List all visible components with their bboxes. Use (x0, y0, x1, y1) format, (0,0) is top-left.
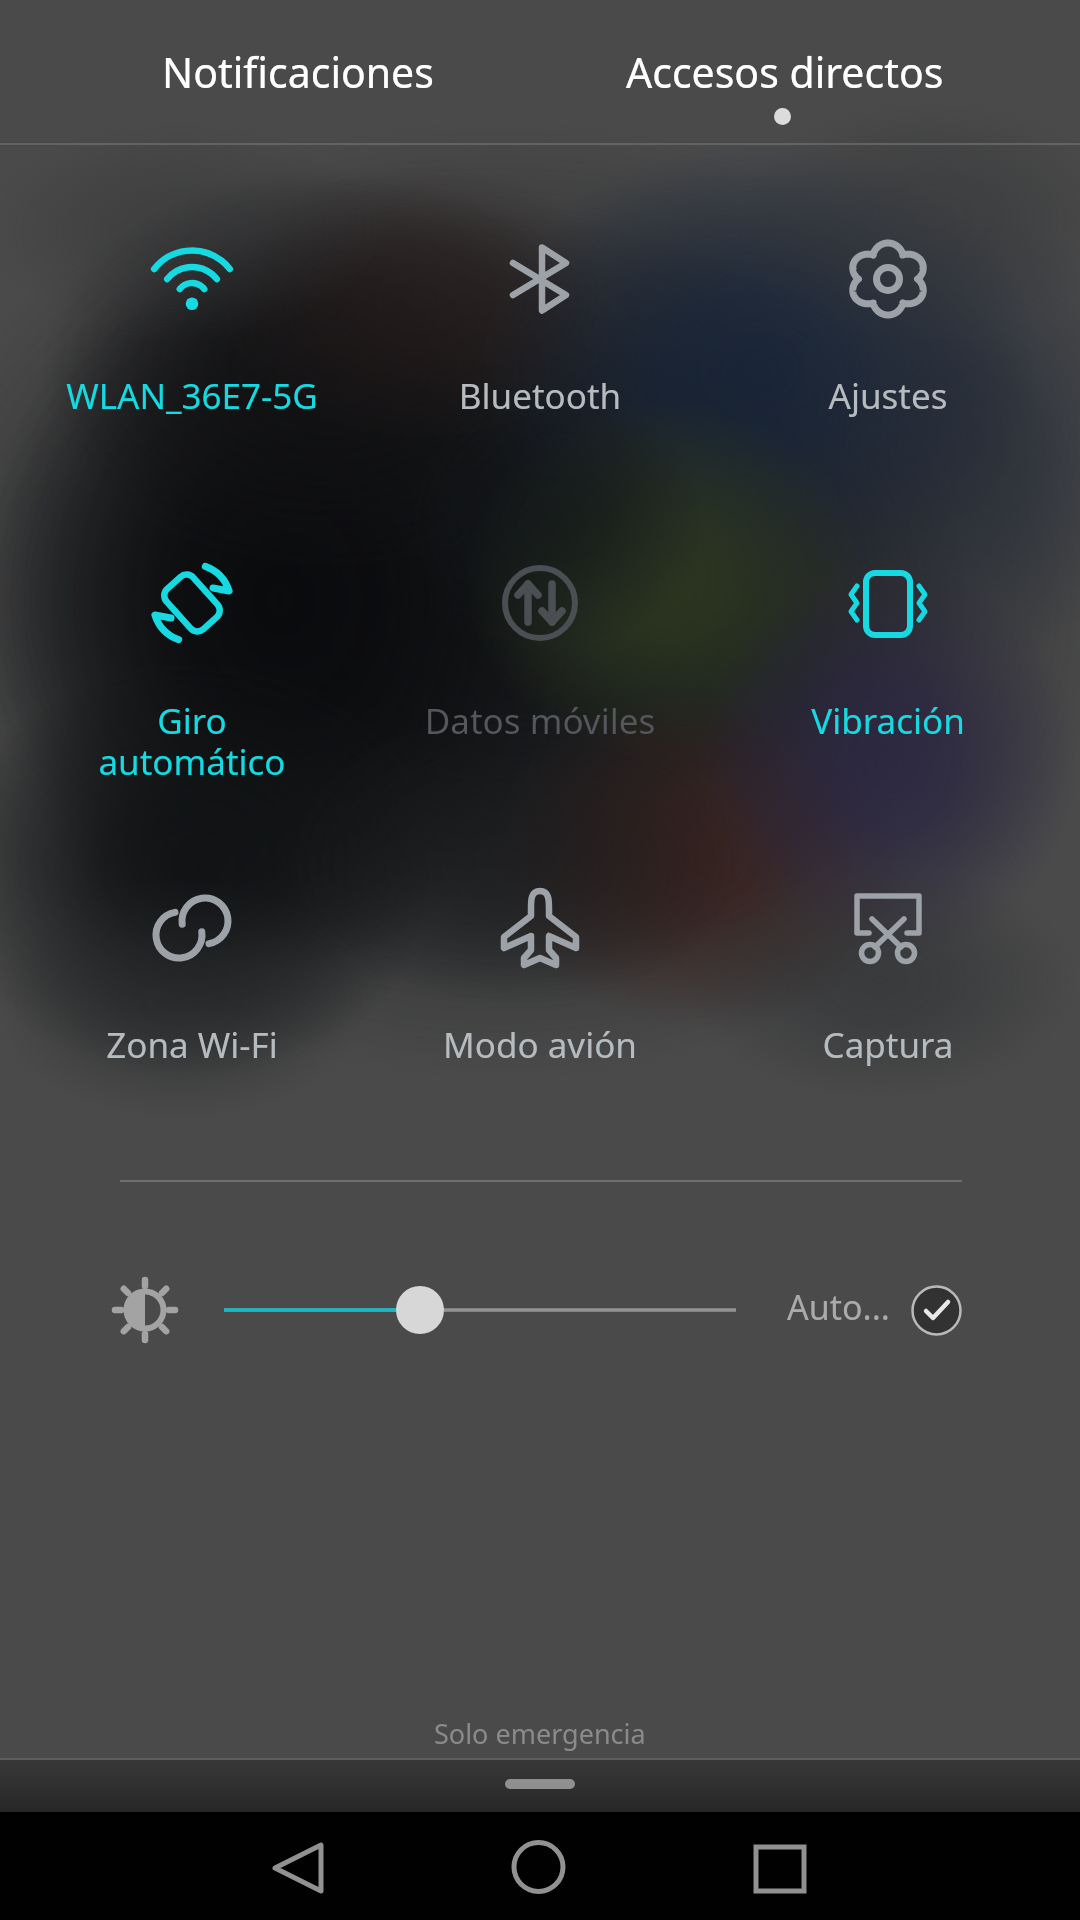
staticText: Captura (714, 1021, 1062, 1069)
button[interactable]: Recents (744, 1833, 814, 1903)
staticText: Solo emergencia (434, 1715, 646, 1752)
staticText: Zona Wi-Fi (18, 1021, 366, 1069)
button[interactable]: Auto brightness (911, 1285, 962, 1336)
button[interactable]: Ajustes (714, 179, 1062, 409)
button[interactable]: Zona Wi-Fi (18, 828, 366, 1058)
button[interactable]: Captura (714, 828, 1062, 1058)
button[interactable]: Giro automático (18, 503, 366, 733)
button[interactable]: Home (503, 1832, 573, 1902)
staticText: Modo avión (366, 1021, 714, 1069)
button[interactable]: Vibración (714, 503, 1062, 733)
staticText: Ajustes (714, 372, 1062, 420)
button[interactable]: WLAN_36E7-5G (18, 179, 366, 409)
button[interactable]: Back (263, 1833, 333, 1903)
staticText: Giro automático (18, 697, 366, 785)
staticText: Notificaciones (162, 44, 434, 100)
button[interactable]: Notificaciones (30, 0, 565, 143)
button[interactable]: Bluetooth (366, 179, 714, 409)
staticText: WLAN_36E7-5G (18, 372, 366, 420)
staticText: Bluetooth (366, 372, 714, 420)
staticText: Datos móviles (366, 697, 714, 745)
staticText: Accesos directos (626, 44, 944, 100)
staticText: Auto... (787, 1284, 890, 1330)
button[interactable]: Modo avión (366, 828, 714, 1058)
staticText: Vibración (714, 697, 1062, 745)
button[interactable]: Accesos directos (565, 0, 1005, 143)
button[interactable]: Datos móviles (366, 503, 714, 733)
